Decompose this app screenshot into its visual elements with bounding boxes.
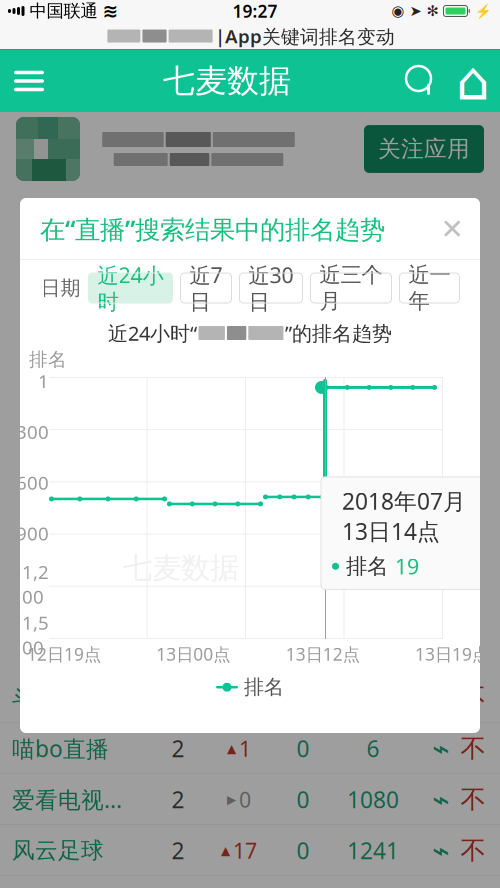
staticText: ⌁	[432, 732, 450, 765]
staticText: 不	[460, 784, 485, 815]
button[interactable]: 近24小时	[88, 273, 172, 303]
staticText: 300	[16, 419, 49, 444]
staticText: ✕	[440, 213, 463, 245]
staticText: 1241	[347, 835, 399, 865]
staticText: 排名	[29, 348, 67, 371]
staticText: 2	[171, 835, 184, 865]
button[interactable]: 关闭	[434, 211, 470, 247]
staticText: ≋	[102, 0, 118, 22]
staticText: 喵bo直播	[12, 733, 109, 763]
staticText: 0	[296, 835, 309, 865]
staticText: 近24小时“	[108, 320, 197, 346]
button[interactable]: 近一年	[399, 273, 459, 303]
staticText: ⚡	[475, 3, 492, 19]
staticText: 1,200	[22, 559, 49, 609]
staticText: ▶	[227, 793, 236, 806]
staticText: 19:27	[232, 0, 277, 22]
staticText: 2	[171, 733, 184, 763]
staticText: 1,500	[22, 610, 49, 660]
staticText: 日期	[40, 276, 80, 300]
button[interactable]: 关注应用	[364, 125, 484, 173]
staticText: ✻	[426, 3, 438, 19]
button[interactable]: 风云足球	[0, 825, 500, 876]
staticText: 600	[16, 470, 49, 495]
staticText: |App关键词排名变动	[215, 24, 395, 48]
staticText: 不	[460, 835, 485, 866]
staticText: 近一年	[408, 262, 450, 314]
staticText: 不	[460, 733, 485, 764]
button[interactable]: 爱看电视...	[0, 774, 500, 825]
staticText: 不	[460, 682, 485, 713]
staticText: 13日00点	[156, 642, 230, 665]
staticText: 1	[38, 368, 49, 393]
staticText: 2018年07月13日14点	[342, 486, 466, 546]
button[interactable]: 喵bo直播	[0, 723, 500, 774]
button[interactable]: 近7日	[180, 273, 231, 303]
staticText: 排名	[244, 675, 284, 699]
staticText: 1080	[347, 784, 399, 814]
staticText: ◉	[391, 3, 404, 19]
button[interactable]: 搜索	[396, 50, 446, 112]
staticText: 19	[395, 552, 419, 580]
button[interactable]: 近30日	[239, 273, 302, 303]
staticText: 斗鱼直播...	[12, 682, 122, 712]
staticText: 0	[296, 784, 309, 814]
button[interactable]: 近三个月	[310, 273, 391, 303]
staticText: 2	[171, 784, 184, 814]
staticText: 0	[296, 733, 309, 763]
button[interactable]: 首页	[446, 50, 500, 112]
staticText: 6	[366, 733, 379, 763]
staticText: 爱看电视...	[12, 784, 122, 814]
staticText: 排名	[346, 553, 388, 579]
staticText: ➤	[409, 3, 421, 19]
staticText: 13日19点	[415, 642, 489, 665]
staticText: 七麦数据	[123, 550, 239, 586]
staticText: ▶	[227, 691, 236, 704]
staticText: 17	[233, 836, 257, 865]
staticText: 近30日	[248, 261, 293, 315]
staticText: 七麦数据	[163, 61, 291, 101]
staticText: 在“直播”搜索结果中的排名趋势	[40, 212, 385, 246]
staticText: 中国联通	[29, 0, 97, 22]
staticText: 13日12点	[286, 642, 360, 665]
staticText: ”的排名趋势	[285, 320, 392, 346]
staticText: ⌁	[432, 783, 450, 816]
staticText: 风云足球	[12, 837, 104, 864]
staticText: 近三个月	[319, 262, 382, 314]
staticText: 900	[16, 521, 49, 546]
staticText: 0	[239, 683, 251, 712]
staticText: 0	[239, 785, 251, 814]
staticText: ⌁	[432, 834, 450, 867]
staticText: 12日19点	[27, 642, 101, 665]
staticText: 近24小时	[97, 261, 163, 315]
staticText: ⌂	[456, 51, 490, 111]
staticText: ▲	[227, 742, 236, 755]
staticText: 近7日	[189, 261, 222, 315]
button[interactable]: 菜单	[0, 50, 58, 112]
staticText: ▲	[221, 844, 230, 857]
staticText: 关注应用	[378, 135, 470, 163]
button[interactable]: 斗鱼直播...	[0, 672, 500, 723]
staticText: 1	[239, 734, 251, 763]
